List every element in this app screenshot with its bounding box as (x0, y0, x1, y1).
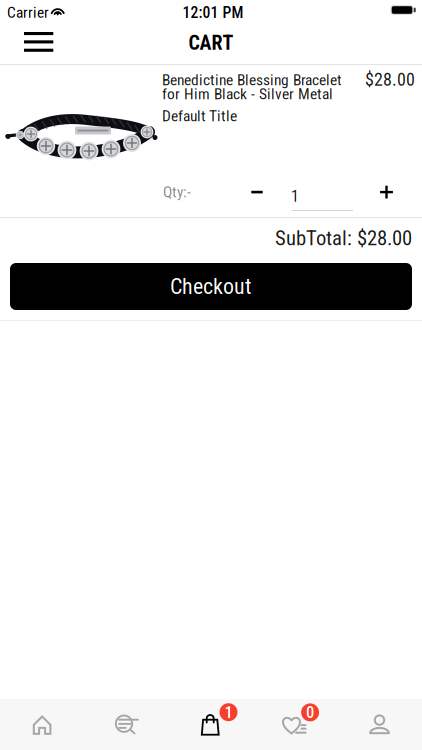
staticText: Qty:- (163, 183, 191, 201)
button[interactable]: Increase quantity (370, 176, 402, 208)
button[interactable]: Checkout (10, 263, 412, 310)
button[interactable]: Menu (0, 22, 53, 64)
staticText: for Him Black - Silver Metal (162, 85, 333, 103)
staticText: Checkout (170, 274, 252, 299)
button[interactable]: Cart (169, 699, 253, 750)
button[interactable]: Home (0, 699, 84, 750)
staticText: SubTotal: $28.00 (275, 226, 412, 250)
staticText: 1 (291, 187, 299, 206)
staticText: 12:01 PM (182, 3, 243, 22)
staticText: 0 (306, 703, 314, 722)
staticText: $28.00 (365, 69, 415, 90)
staticText: Carrier (7, 3, 49, 21)
staticText: Default Title (162, 107, 237, 125)
button[interactable]: Search (84, 699, 169, 750)
staticText: 1 (224, 702, 232, 722)
staticText: Benedictine Blessing Bracelet (162, 71, 342, 89)
button[interactable]: Account (338, 699, 422, 750)
button[interactable]: Wishlist (253, 699, 338, 750)
staticText: CART (188, 31, 233, 55)
button[interactable]: Decrease quantity (241, 176, 273, 208)
